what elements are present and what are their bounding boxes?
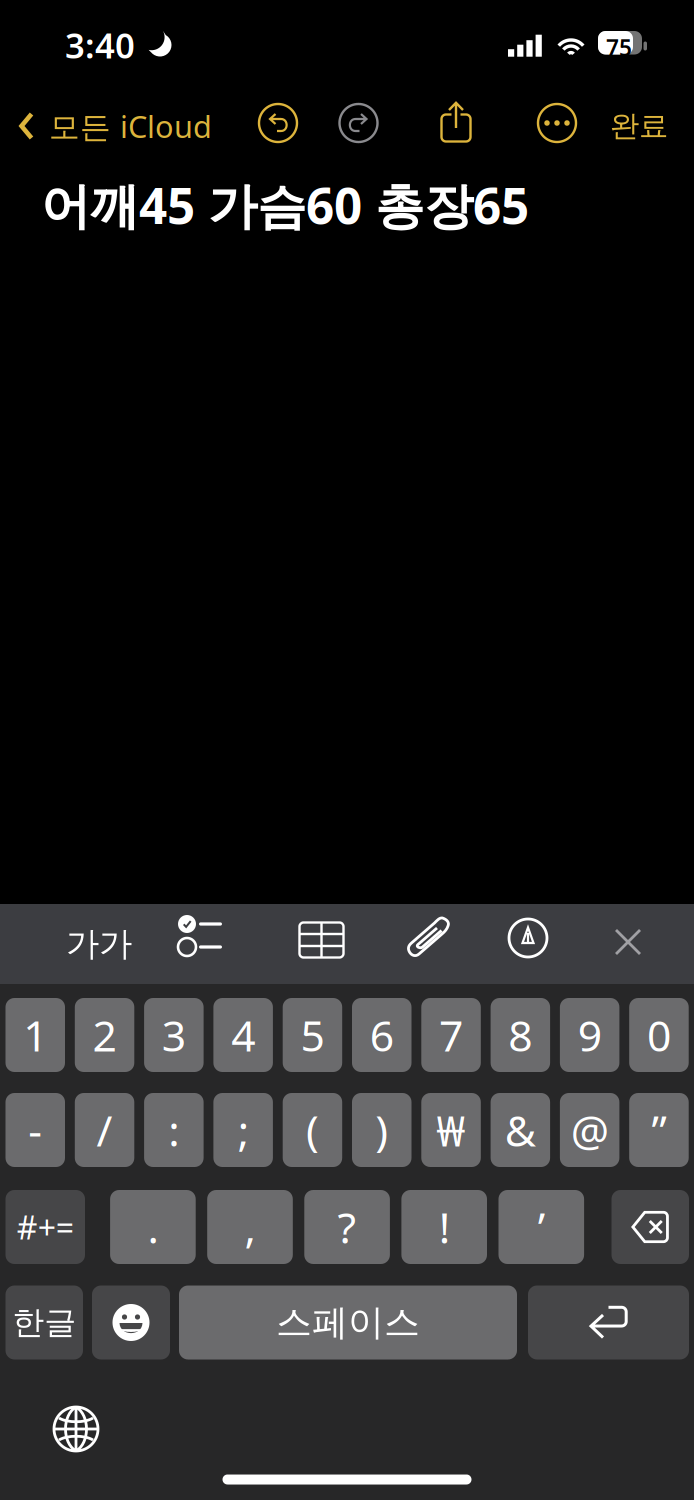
button[interactable]: Return [528,1285,689,1359]
staticText: 9 [578,1007,602,1063]
button[interactable]: 0 [629,998,689,1072]
button[interactable]: Table [294,917,349,963]
button[interactable]: Close keyboard [603,917,653,967]
button[interactable]: 4 [213,998,273,1072]
staticText: ! [439,1199,450,1255]
staticText: - [28,1102,42,1158]
staticText: ) [375,1102,388,1158]
staticText: @ [571,1102,609,1158]
button[interactable]: Attach [403,912,455,964]
staticText: 8 [508,1007,532,1063]
staticText: ’ [538,1199,545,1255]
button[interactable]: ” [629,1093,689,1167]
staticText: / [96,1102,112,1158]
staticText: , [244,1199,255,1255]
button[interactable]: #+= [5,1190,85,1264]
button[interactable]: ; [213,1093,273,1167]
button[interactable]: 8 [491,998,550,1072]
staticText: . [147,1199,158,1255]
staticText: 0 [647,1007,671,1063]
staticText: 2 [92,1007,116,1063]
button[interactable]: 완료 [601,93,677,159]
button[interactable]: Share [437,98,477,146]
button[interactable]: More [537,103,577,143]
staticText: 4 [231,1007,255,1063]
button[interactable]: : [144,1093,204,1167]
button[interactable]: 스페이스 [179,1285,517,1359]
staticText: 1 [23,1007,47,1063]
staticText: 완료 [610,108,668,144]
button[interactable]: ( [283,1093,342,1167]
staticText: #+= [17,1206,74,1248]
staticText: 7 [439,1007,463,1063]
button[interactable]: 6 [352,998,411,1072]
staticText: ( [306,1102,319,1158]
staticText: ; [238,1102,249,1158]
button[interactable]: Checklist [178,915,223,957]
button[interactable]: Undo [258,103,298,143]
button[interactable]: Markup [504,914,552,962]
button[interactable]: Emoji [92,1285,170,1359]
button[interactable]: 3 [144,998,204,1072]
button[interactable]: , [207,1190,293,1264]
button[interactable]: ₩ [421,1093,481,1167]
staticText: 어깨45 가슴60 총장65 [41,172,529,237]
button[interactable]: Delete [611,1190,689,1264]
button[interactable]: 가가 [63,908,135,980]
staticText: ” [651,1102,666,1158]
staticText: 스페이스 [276,1300,420,1345]
button[interactable]: - [5,1093,65,1167]
button[interactable]: 9 [560,998,619,1072]
staticText: : [168,1102,179,1158]
button[interactable]: 한글 [5,1285,83,1359]
button[interactable]: 7 [421,998,481,1072]
button[interactable]: ) [352,1093,411,1167]
staticText: ₩ [437,1102,466,1158]
staticText: 3 [162,1007,186,1063]
staticText: 3:40 [65,22,135,68]
button[interactable]: & [491,1093,550,1167]
button[interactable]: 2 [75,998,134,1072]
button[interactable]: @ [560,1093,619,1167]
button[interactable]: Redo [338,103,378,143]
staticText: ? [338,1199,357,1255]
button[interactable]: Switch keyboard [48,1401,104,1457]
button[interactable]: ’ [498,1190,584,1264]
staticText: 한글 [12,1303,76,1342]
staticText: 모든 iCloud [49,106,212,146]
button[interactable]: 5 [283,998,342,1072]
button[interactable]: . [110,1190,196,1264]
staticText: 5 [300,1007,324,1063]
button[interactable]: / [75,1093,134,1167]
button[interactable]: 모든 iCloud [4,93,226,159]
staticText: & [505,1102,536,1158]
button[interactable]: ? [304,1190,390,1264]
staticText: 75 [606,32,632,63]
staticText: 6 [370,1007,394,1063]
button[interactable]: 1 [5,998,65,1072]
staticText: 가가 [66,923,132,964]
button[interactable]: ! [401,1190,487,1264]
